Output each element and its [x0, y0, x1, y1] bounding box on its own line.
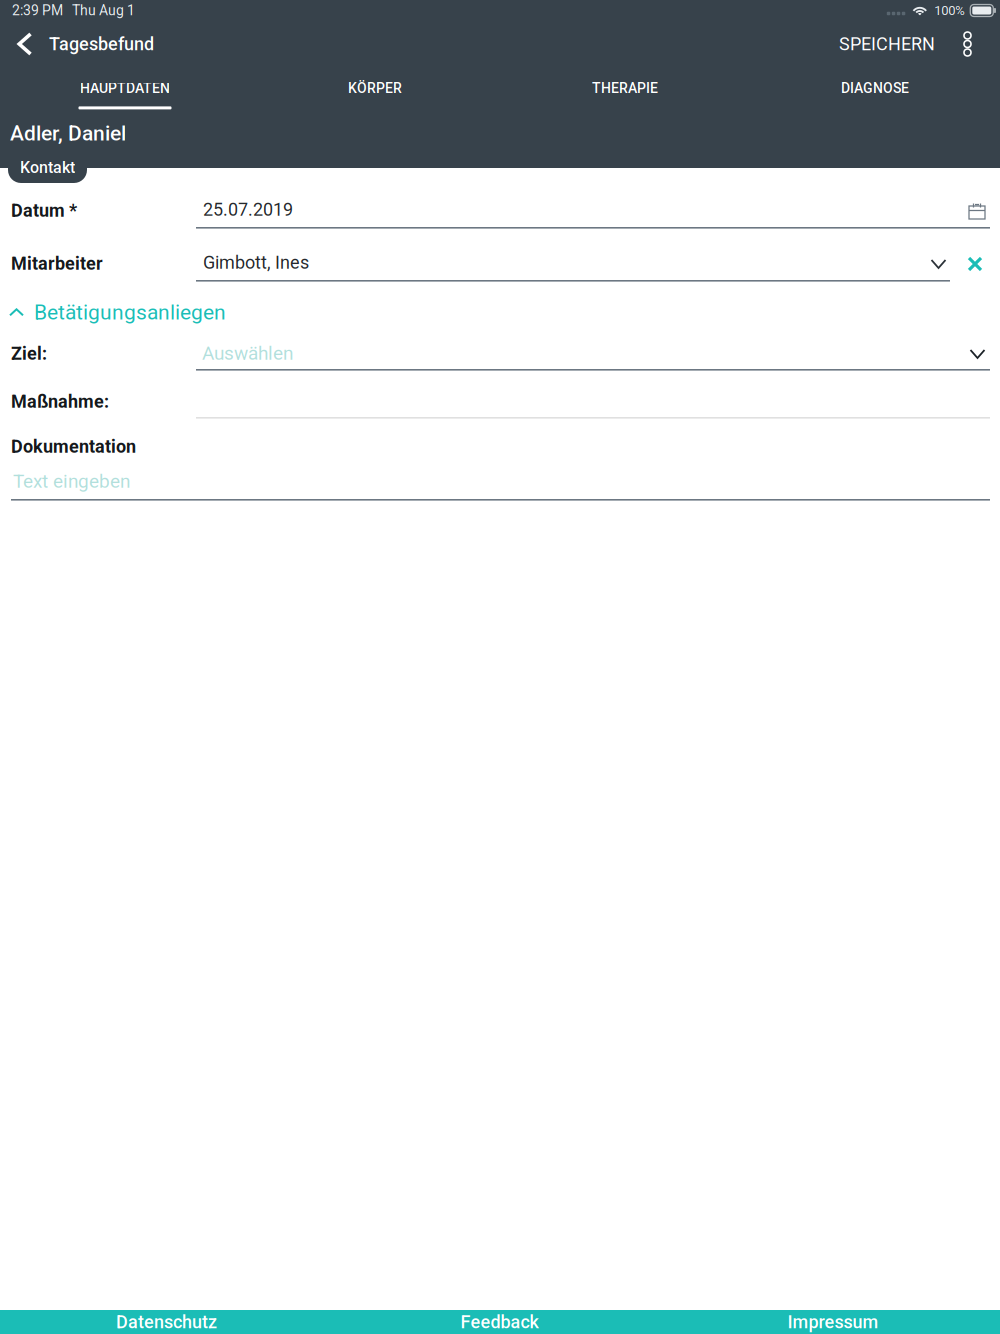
staticText: Thu Aug 1: [72, 2, 135, 19]
staticText: 25.07.2019: [203, 199, 293, 220]
button[interactable]: HAUPTDATEN: [0, 67, 250, 121]
button[interactable]: Pick date: [960, 194, 994, 228]
staticText: Mitarbeiter: [11, 253, 103, 274]
staticText: DIAGNOSE: [841, 80, 909, 96]
staticText: 2:39 PM: [12, 2, 63, 19]
button[interactable]: KÖRPER: [250, 67, 500, 121]
button[interactable]: More options: [952, 21, 983, 67]
staticText: Datum *: [11, 200, 77, 221]
button[interactable]: Clear employee: [959, 248, 991, 280]
staticText: Auswählen: [202, 342, 293, 364]
button[interactable]: Tagesbefund: [0, 21, 166, 67]
button[interactable]: Betätigungsanliegen: [9, 296, 226, 329]
staticText: SPEICHERN: [839, 33, 935, 55]
button[interactable]: THERAPIE: [500, 67, 750, 121]
staticText: HAUPTDATEN: [80, 80, 170, 96]
button[interactable]: DIAGNOSE: [750, 67, 1000, 121]
staticText: THERAPIE: [592, 80, 658, 96]
staticText: Maßnahme:: [11, 391, 109, 412]
staticText: 100%: [934, 3, 965, 18]
staticText: Betätigungsanliegen: [34, 300, 226, 325]
staticText: Adler, Daniel: [10, 121, 126, 146]
button[interactable]: SPEICHERN: [827, 21, 947, 67]
button[interactable]: Feedback: [333, 1310, 666, 1334]
staticText: Text eingeben: [13, 470, 130, 492]
staticText: KÖRPER: [348, 80, 402, 96]
button[interactable]: Choose employee: [922, 250, 955, 278]
staticText: Tagesbefund: [49, 33, 154, 55]
button[interactable]: Choose goal: [961, 340, 994, 368]
staticText: Datenschutz: [116, 1311, 217, 1333]
staticText: Impressum: [787, 1311, 878, 1333]
staticText: Kontakt: [20, 158, 75, 177]
staticText: Gimbott, Ines: [203, 252, 309, 273]
button[interactable]: Datenschutz: [0, 1310, 333, 1334]
staticText: Dokumentation: [11, 436, 136, 457]
button[interactable]: Impressum: [666, 1310, 1000, 1334]
button[interactable]: Kontakt: [8, 148, 87, 183]
staticText: Ziel:: [11, 343, 47, 364]
staticText: Feedback: [460, 1311, 538, 1333]
